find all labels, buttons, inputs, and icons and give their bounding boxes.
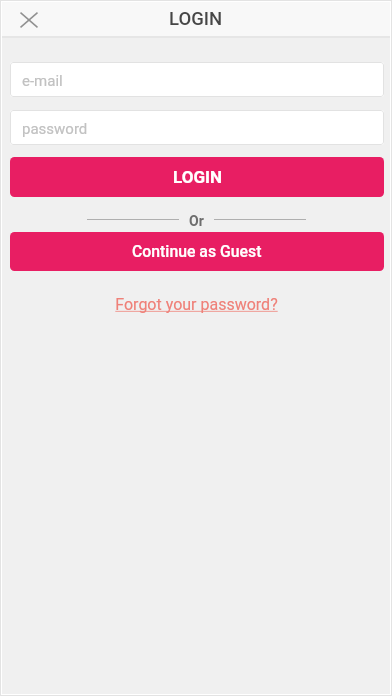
staticText: password: [22, 120, 88, 138]
staticText: e-mail: [22, 72, 63, 90]
staticText: LOGIN: [173, 167, 222, 187]
button[interactable]: Close: [16, 7, 42, 33]
staticText: LOGIN: [169, 8, 223, 30]
button[interactable]: Forgot your password?: [109, 292, 284, 317]
staticText: Or: [189, 213, 204, 228]
button[interactable]: e-mail: [10, 62, 384, 97]
button[interactable]: LOGIN: [10, 157, 384, 197]
button[interactable]: password: [10, 110, 384, 145]
button[interactable]: Continue as Guest: [10, 232, 384, 271]
staticText: Continue as Guest: [132, 242, 262, 261]
